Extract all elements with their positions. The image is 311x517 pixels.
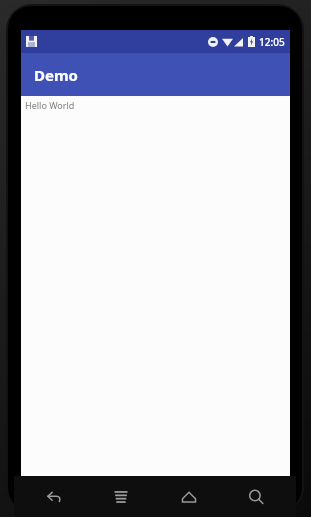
staticText: Demo	[34, 65, 78, 85]
staticText: Hello World	[25, 99, 75, 111]
button[interactable]: Search	[228, 476, 284, 517]
staticText: 12:05	[259, 35, 285, 49]
button[interactable]: Back	[26, 476, 82, 517]
button[interactable]: Recent apps	[93, 476, 149, 517]
button[interactable]: Home	[161, 476, 217, 517]
